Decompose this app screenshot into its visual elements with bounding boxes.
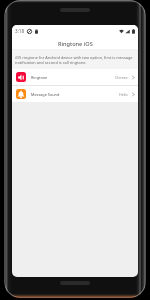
staticText: Hello	[119, 92, 128, 97]
button[interactable]: Message Sound	[12, 86, 138, 102]
staticText: Chimes	[115, 75, 128, 80]
staticText: Ringtone	[31, 75, 48, 80]
staticText: iOS ringtone for Android device with two…	[15, 55, 135, 65]
staticText: Message Sound	[31, 92, 60, 97]
staticText: Ringtone iOS	[58, 40, 93, 48]
button[interactable]: Ringtone	[12, 69, 138, 85]
staticText: 3:18	[15, 28, 25, 34]
